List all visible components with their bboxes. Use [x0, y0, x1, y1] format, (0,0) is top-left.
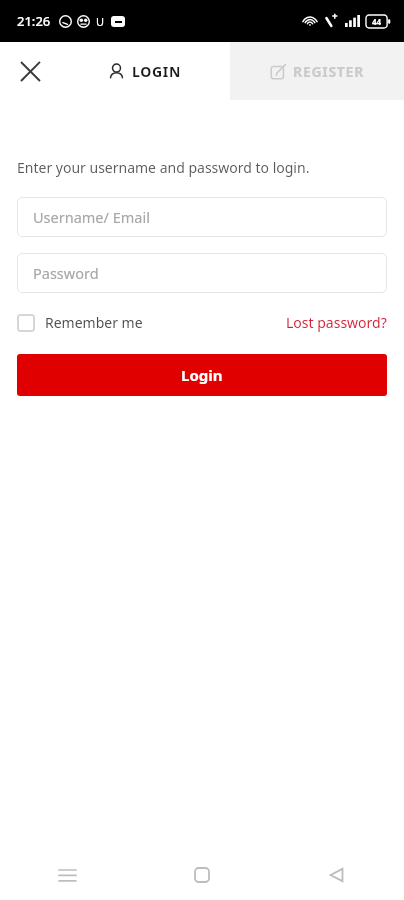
staticText: REGISTER — [293, 62, 365, 81]
button[interactable]: REGISTER — [230, 42, 404, 100]
button[interactable]: Home — [134, 850, 269, 900]
button[interactable]: Close — [0, 42, 60, 100]
staticText: Enter your username and password to logi… — [17, 158, 310, 177]
staticText: U — [96, 14, 105, 29]
staticText: 44 — [372, 16, 382, 27]
button[interactable]: Back — [269, 850, 404, 900]
button[interactable]: Login — [17, 354, 387, 396]
button[interactable]: Remember me — [17, 313, 143, 332]
button[interactable]: Password — [17, 253, 387, 293]
button[interactable]: LOGIN — [60, 42, 230, 100]
staticText: Password — [33, 263, 99, 283]
staticText: 21:26 — [17, 12, 51, 30]
staticText: LOGIN — [132, 62, 182, 81]
staticText: Username/ Email — [33, 207, 150, 227]
staticText: Remember me — [45, 313, 143, 332]
staticText: Lost password? — [286, 313, 387, 332]
staticText: Login — [181, 365, 223, 385]
button[interactable]: Username/ Email — [17, 197, 387, 237]
button[interactable]: Recent apps — [0, 850, 134, 900]
button[interactable]: Lost password? — [286, 313, 387, 332]
